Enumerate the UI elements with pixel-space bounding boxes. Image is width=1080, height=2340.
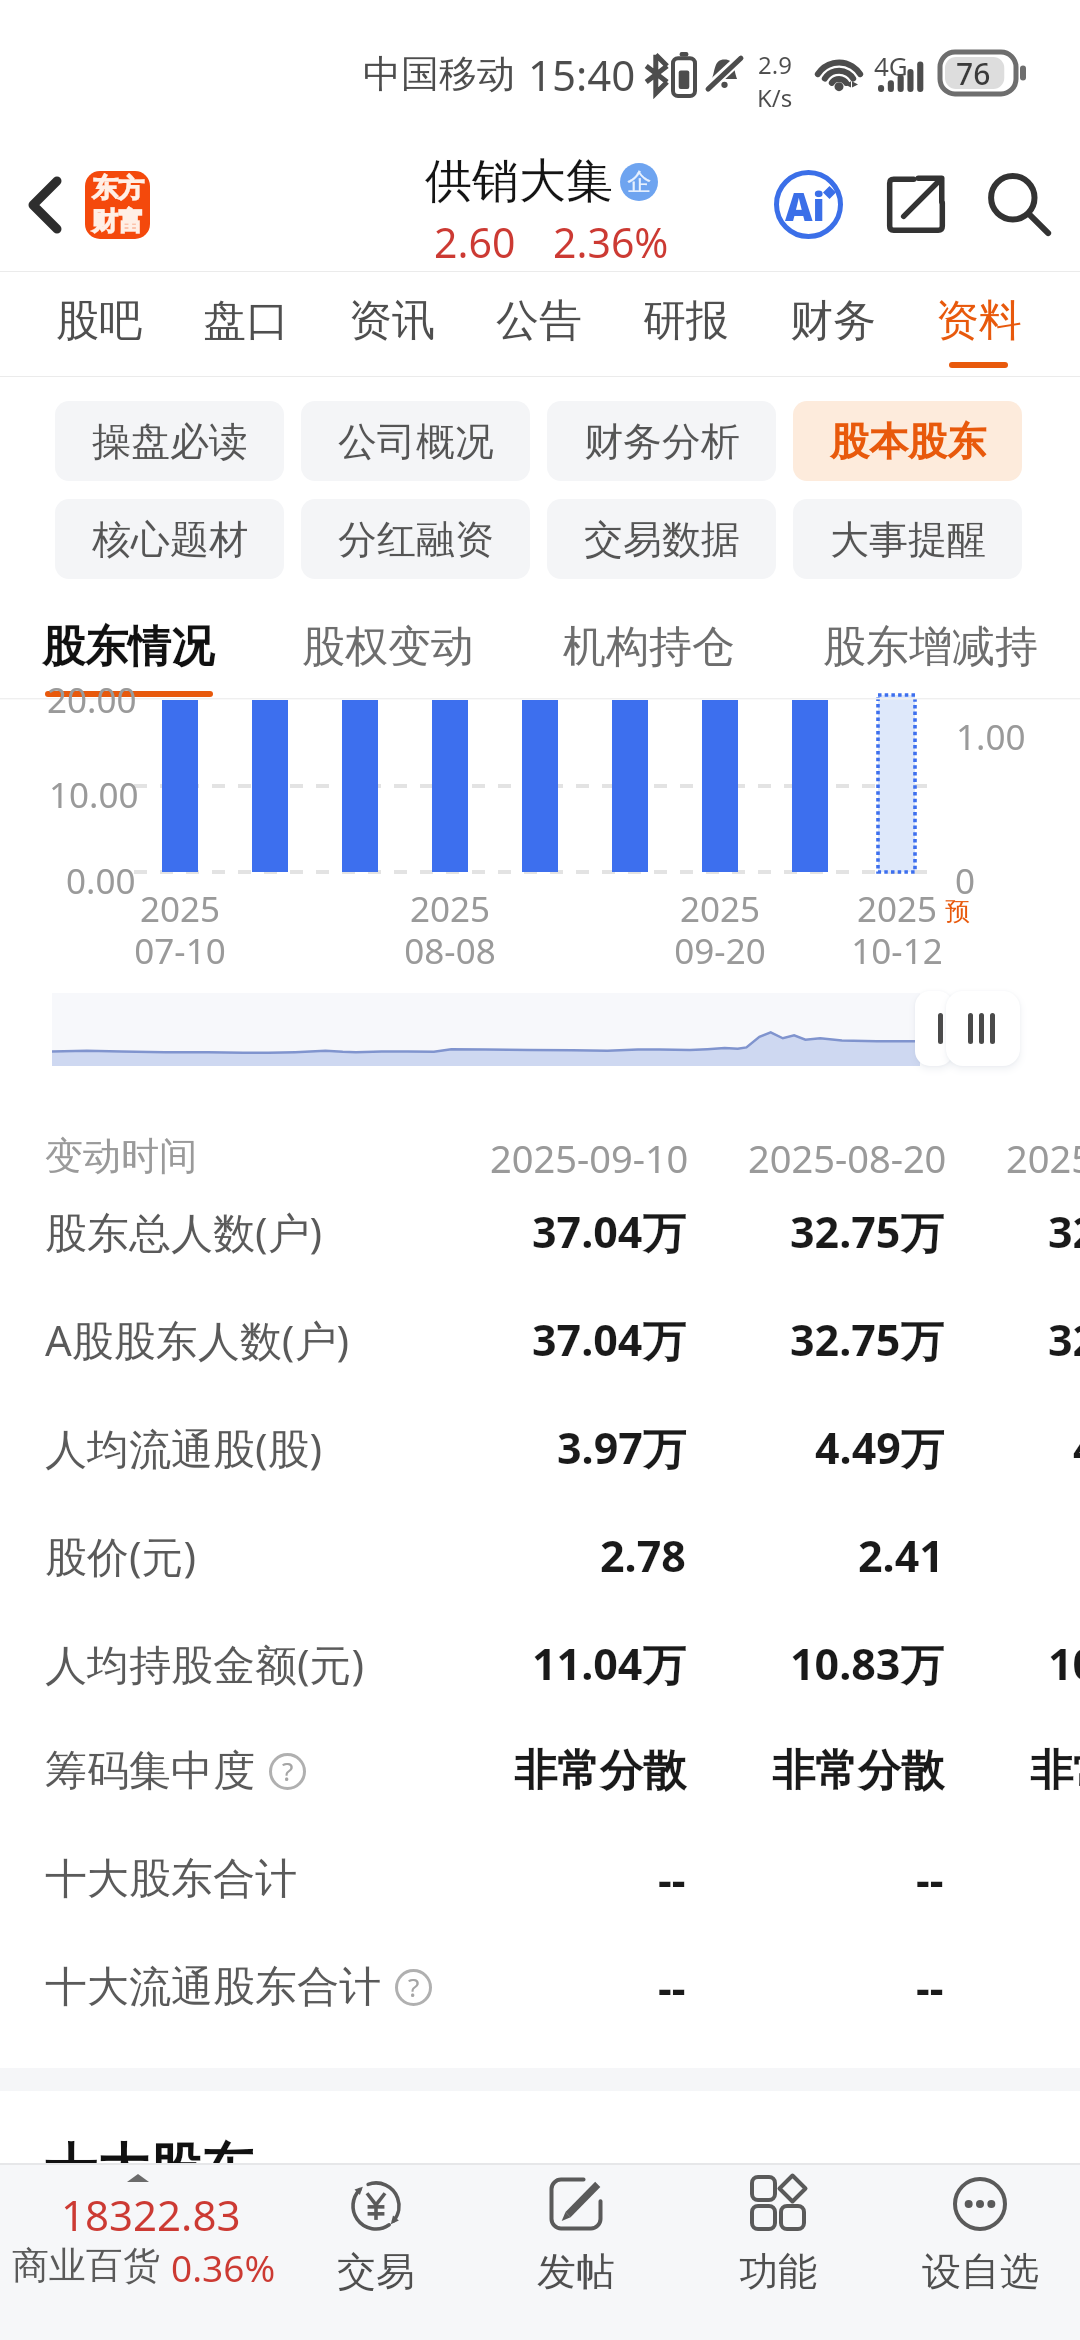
staticText: 2.78 bbox=[600, 1526, 686, 1585]
button[interactable]: A股股东人数(户) bbox=[0, 1285, 1080, 1393]
button[interactable]: Single pane bbox=[915, 991, 953, 1066]
staticText: 大事提醒 bbox=[830, 515, 986, 564]
staticText: 股东增减持 bbox=[823, 620, 1038, 674]
button[interactable]: 十大股东合计 bbox=[0, 1825, 1080, 1933]
button[interactable]: 股东总人数(户) bbox=[0, 1177, 1080, 1285]
staticText: 资料 bbox=[936, 294, 1022, 348]
staticText: 人均流通股(股) bbox=[45, 1419, 323, 1476]
staticText: 2025-09-10 bbox=[490, 1132, 689, 1184]
staticText: 2025 10-12 bbox=[851, 885, 943, 974]
button[interactable]: Multi pane bbox=[946, 991, 1020, 1066]
staticText: 2.9 bbox=[758, 48, 792, 81]
staticText: 预 bbox=[945, 896, 970, 927]
staticText: 非常分散 bbox=[1030, 1744, 1080, 1798]
staticText: 十大流通股东合计 bbox=[45, 1961, 381, 2014]
button[interactable]: 大事提醒 bbox=[793, 499, 1022, 579]
staticText: 32.75万 bbox=[1048, 1202, 1080, 1261]
button[interactable]: 财务 bbox=[760, 272, 906, 376]
staticText: 筹码集中度 bbox=[45, 1745, 255, 1798]
button[interactable]: 股吧 bbox=[26, 272, 172, 376]
staticText: 18322.83 bbox=[61, 2186, 241, 2243]
staticText: 人均持股金额(元) bbox=[45, 1635, 365, 1692]
button[interactable]: 人均持股金额(元) bbox=[0, 1609, 1080, 1717]
staticText: -- bbox=[658, 1958, 686, 2017]
button[interactable]: 股价(元) bbox=[0, 1501, 1080, 1609]
staticText: 3.97万 bbox=[557, 1418, 686, 1477]
button[interactable]: 研报 bbox=[613, 272, 759, 376]
button[interactable]: 盘口 bbox=[173, 272, 319, 376]
button[interactable]: Back bbox=[0, 150, 90, 260]
staticText: 1.00 bbox=[956, 713, 1026, 761]
staticText: 20.00 bbox=[47, 676, 137, 724]
button[interactable]: 发帖 bbox=[486, 2163, 666, 2315]
staticText: 功能 bbox=[739, 2247, 817, 2296]
staticText: K/s bbox=[757, 81, 793, 114]
staticText: 2025 08-08 bbox=[404, 885, 496, 974]
staticText: ? bbox=[408, 1969, 420, 2004]
button[interactable]: Share bbox=[872, 160, 960, 248]
staticText: 76 bbox=[956, 53, 991, 94]
button[interactable]: AI assistant bbox=[764, 160, 852, 248]
staticText: 0.00 bbox=[66, 857, 136, 905]
staticText: 研报 bbox=[643, 294, 729, 348]
button[interactable]: 机构持仓 bbox=[514, 600, 784, 697]
staticText: 10.00 bbox=[49, 771, 139, 819]
staticText: 股权变动 bbox=[302, 620, 474, 674]
staticText: 机构持仓 bbox=[563, 620, 735, 674]
staticText: 37.04万 bbox=[532, 1310, 686, 1369]
button[interactable]: 功能 bbox=[688, 2163, 868, 2315]
staticText: 资讯 bbox=[349, 294, 435, 348]
staticText: 2.41 bbox=[858, 1526, 944, 1585]
staticText: 股价(元) bbox=[45, 1527, 197, 1584]
staticText: 2025 07-10 bbox=[134, 885, 226, 974]
staticText: 财务 bbox=[790, 294, 876, 348]
button[interactable]: 核心题材 bbox=[55, 499, 284, 579]
staticText: 东方 bbox=[92, 172, 144, 205]
button[interactable]: 分红融资 bbox=[301, 499, 530, 579]
staticText: 10.83万 bbox=[1048, 1634, 1080, 1693]
staticText: A股股东人数(户) bbox=[45, 1311, 350, 1368]
button[interactable]: 交易数据 bbox=[547, 499, 776, 579]
staticText: -- bbox=[916, 1850, 944, 1909]
staticText: 4G bbox=[874, 48, 908, 83]
button[interactable]: 资料 bbox=[906, 272, 1052, 376]
staticText: 公告 bbox=[496, 294, 582, 348]
staticText: -- bbox=[916, 1958, 944, 2017]
button[interactable]: Index 18322.83 bbox=[0, 2163, 285, 2315]
staticText: -- bbox=[658, 1850, 686, 1909]
button[interactable]: 股东情况 bbox=[0, 600, 263, 697]
staticText: 公司概况 bbox=[338, 417, 494, 466]
staticText: 4.49万 bbox=[815, 1418, 944, 1477]
button[interactable]: 资讯 bbox=[319, 272, 465, 376]
button[interactable]: 公司概况 bbox=[301, 401, 530, 481]
staticText: 股本股东 bbox=[830, 417, 986, 466]
button[interactable]: 股权变动 bbox=[253, 600, 523, 697]
staticText: 设自选 bbox=[922, 2247, 1039, 2296]
button[interactable]: 人均流通股(股) bbox=[0, 1393, 1080, 1501]
button[interactable]: 交易 bbox=[286, 2163, 466, 2315]
button[interactable]: 设自选 bbox=[890, 2163, 1070, 2315]
button[interactable]: 十大流通股东合计 bbox=[0, 1933, 1080, 2041]
button[interactable]: 公告 bbox=[466, 272, 612, 376]
button[interactable]: 操盘必读 bbox=[55, 401, 284, 481]
staticText: 32.75万 bbox=[790, 1202, 944, 1261]
button[interactable]: 财务分析 bbox=[547, 401, 776, 481]
button[interactable]: East Money bbox=[85, 171, 150, 239]
staticText: 企 bbox=[627, 167, 651, 197]
staticText: 非常分散 bbox=[772, 1744, 944, 1798]
staticText: 2.36% bbox=[553, 214, 669, 270]
staticText: 2025 09-20 bbox=[674, 885, 766, 974]
staticText: 11.04万 bbox=[532, 1634, 686, 1693]
staticText: 股东情况 bbox=[42, 620, 214, 674]
button[interactable]: 股本股东 bbox=[793, 401, 1022, 481]
button[interactable]: Search bbox=[975, 160, 1063, 248]
button[interactable]: 股东增减持 bbox=[795, 600, 1065, 697]
staticText: 中国移动 bbox=[363, 50, 515, 98]
staticText: 发帖 bbox=[537, 2247, 615, 2296]
staticText: 2025-07-31 bbox=[1006, 1132, 1080, 1184]
staticText: 操盘必读 bbox=[92, 417, 248, 466]
staticText: 财富 bbox=[92, 205, 144, 238]
button[interactable]: 筹码集中度 bbox=[0, 1717, 1080, 1825]
staticText: 十大股东合计 bbox=[45, 1853, 297, 1906]
staticText: 10.83万 bbox=[790, 1634, 944, 1693]
